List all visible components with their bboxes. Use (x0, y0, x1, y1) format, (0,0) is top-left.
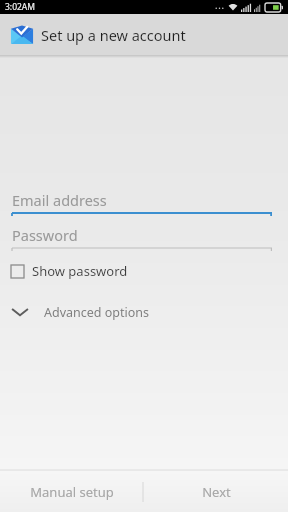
other: Expand advanced options (10, 302, 30, 322)
button[interactable]: Password (0, 225, 288, 251)
staticText: Password (12, 225, 78, 245)
button[interactable]: Expand advanced options (0, 296, 288, 328)
staticText: Next (202, 483, 231, 501)
staticText: Manual setup (30, 483, 114, 501)
staticText: Email address (12, 190, 107, 210)
button[interactable]: Manual setup (0, 471, 143, 512)
button[interactable]: Show password (0, 258, 288, 284)
staticText: Set up a new account (41, 25, 186, 45)
staticText: Show password (32, 262, 128, 280)
button[interactable]: Email address (0, 190, 288, 216)
staticText: 3:02AM (5, 1, 36, 13)
staticText: Advanced options (44, 304, 150, 321)
button[interactable]: Next (144, 471, 288, 512)
